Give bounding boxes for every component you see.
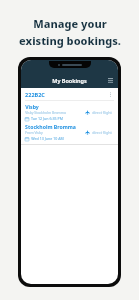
staticText: Visby Stockholm Bromma bbox=[25, 110, 66, 115]
staticText: Visby bbox=[25, 103, 39, 110]
staticText: From Visby bbox=[25, 130, 43, 135]
button[interactable]: 222B2C bbox=[21, 88, 118, 144]
button[interactable]: More options bbox=[107, 91, 114, 98]
staticText: direct flight bbox=[92, 110, 112, 115]
staticText: Wed 13 June 10 AM bbox=[31, 136, 64, 141]
staticText: Stockholm Bromma bbox=[25, 123, 76, 130]
staticText: Manage your bbox=[33, 16, 107, 31]
staticText: direct flight bbox=[92, 130, 112, 135]
staticText: existing bookings. bbox=[19, 33, 121, 48]
staticText: My Bookings bbox=[52, 77, 87, 84]
button[interactable]: Menu bbox=[106, 76, 115, 85]
staticText: 222B2C bbox=[25, 91, 45, 98]
staticText: Tue 12 Jun 6:35 PM bbox=[31, 116, 63, 121]
